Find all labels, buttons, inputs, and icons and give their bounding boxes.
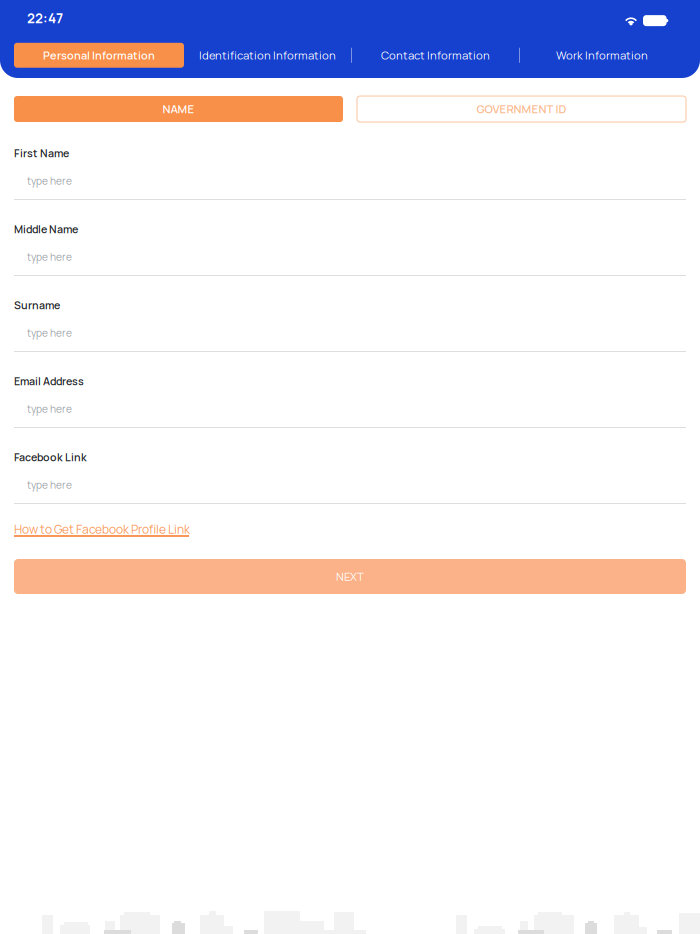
button[interactable]: NAME [14,96,343,122]
button[interactable]: NEXT [14,559,686,594]
staticText: type here [27,326,72,340]
staticText: NAME [162,101,194,117]
button[interactable]: Personal Information [14,43,184,68]
button[interactable]: GOVERNMENT ID [357,96,686,122]
button[interactable]: Work Information [556,42,648,68]
staticText: NEXT [336,569,364,584]
staticText: 22:47 [27,9,63,27]
staticText: GOVERNMENT ID [476,101,566,117]
staticText: How to Get Facebook Profile Link [14,521,190,537]
button[interactable]: How to Get Facebook Profile Link [14,521,190,537]
staticText: Work Information [556,47,648,63]
staticText: Surname [14,298,60,313]
staticText: First Name [14,146,69,161]
staticText: Email Address [14,374,84,389]
staticText: type here [27,250,72,264]
staticText: Identification Information [199,47,336,63]
staticText: Facebook Link [14,450,87,465]
staticText: Middle Name [14,222,78,237]
staticText: Personal Information [43,48,155,63]
staticText: type here [27,174,72,188]
staticText: Contact Information [381,47,490,63]
staticText: type here [27,402,72,416]
staticText: type here [27,478,72,492]
button[interactable]: Identification Information [199,42,336,68]
button[interactable]: Contact Information [381,42,490,68]
